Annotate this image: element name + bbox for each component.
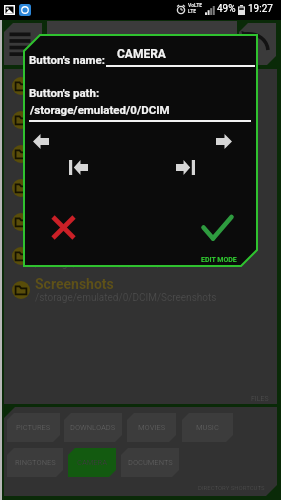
staticText: Camera (35, 140, 84, 156)
staticText: DOCUMENTS (128, 458, 173, 467)
staticText: CAMERA (117, 47, 166, 61)
staticText: 100ANDRO (35, 106, 107, 122)
button[interactable]: .thumbnails (4, 69, 277, 103)
staticText: DIRECTORY SHORTCUTS (198, 484, 265, 491)
staticText: Facebook (35, 208, 96, 224)
staticText: MUSIC (196, 423, 219, 432)
button[interactable]: Photo editor (4, 239, 277, 273)
button[interactable]: Facebook (4, 205, 277, 239)
staticText: MOVIES (138, 423, 166, 432)
staticText: /storage/emulated/0/DCIM/Screenshots (35, 292, 217, 304)
staticText: VoLTE (188, 2, 203, 8)
button[interactable]: 100ANDRO (4, 103, 277, 137)
button[interactable]: CoverCamera (4, 171, 277, 205)
button[interactable]: Cancel (51, 215, 76, 240)
button[interactable]: DOWNLOADS (64, 413, 122, 442)
button[interactable]: Previous (33, 134, 49, 149)
staticText: EDIT MODE (201, 256, 237, 264)
button[interactable]: RINGTONES (7, 448, 63, 477)
staticText: /storage/emulated/0/DCIM (50, 35, 172, 47)
staticText: Button's name: (29, 53, 105, 66)
staticText: Screenshots (35, 276, 114, 292)
button[interactable]: Last (176, 160, 195, 175)
staticText: MENU (24, 59, 39, 65)
button[interactable]: CAMERA (68, 448, 116, 477)
button[interactable]: First (69, 160, 88, 175)
button[interactable]: Screenshots (4, 273, 277, 307)
staticText: /storage/emulated/0/DCIM/.thumbnails (35, 88, 214, 100)
staticText: CAMERA (77, 458, 108, 467)
staticText: /storage/emulated/0/DCIM (30, 103, 170, 116)
staticText: RINGTONES (15, 458, 56, 467)
staticText: UNDO (243, 59, 257, 65)
staticText: /storage/emulated/0/DCIM/Camera (35, 156, 196, 168)
staticText: PICTURES (16, 423, 51, 432)
button[interactable]: Confirm (202, 215, 232, 240)
staticText: CoverCamera (35, 174, 121, 190)
staticText: 19:27 (248, 3, 273, 15)
button[interactable]: Next (216, 134, 232, 149)
staticText: FILES (251, 395, 269, 403)
staticText: /storage/emulated/0/DCIM/Photo editor (35, 258, 216, 270)
staticText: LTE (188, 8, 197, 14)
staticText: /storage/emulated/0/DCIM/Facebook (35, 224, 205, 236)
button[interactable]: Menu (4, 23, 42, 65)
button[interactable]: MOVIES (127, 413, 176, 442)
button[interactable]: Camera (4, 137, 277, 171)
button[interactable]: Undo (239, 23, 276, 65)
staticText: DOWNLOADS (70, 423, 116, 432)
button[interactable]: MUSIC (182, 413, 233, 442)
staticText: 49% (217, 3, 236, 15)
staticText: Button's path: (29, 86, 100, 99)
button[interactable]: DOCUMENTS (121, 448, 179, 477)
button[interactable]: PICTURES (7, 413, 60, 442)
